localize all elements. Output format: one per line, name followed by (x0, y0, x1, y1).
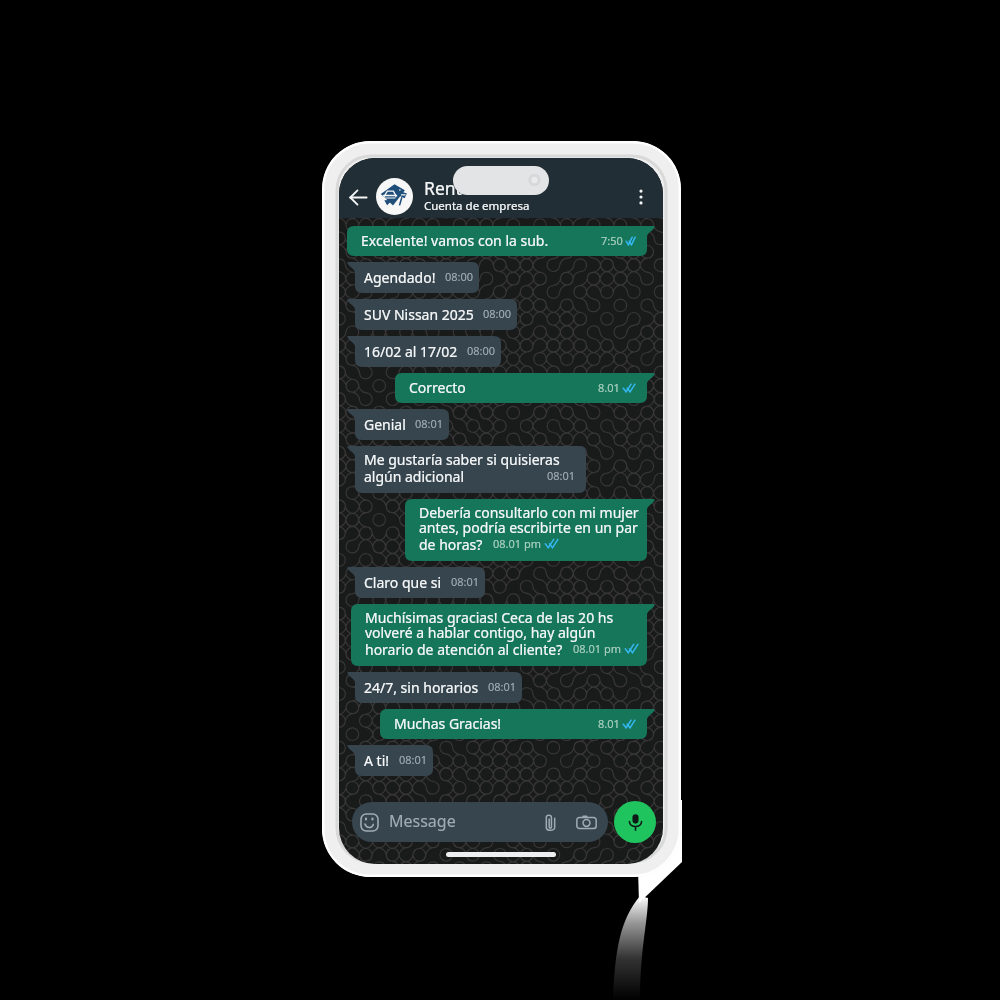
button[interactable]: More options (626, 182, 656, 212)
button[interactable]: Debería consultarlo con mi mujer (405, 499, 655, 561)
button[interactable]: SUV Nissan 2025 (347, 299, 517, 330)
staticText: Message (389, 813, 456, 831)
staticText: Me gustaría saber si quisieras (364, 453, 560, 468)
staticText: de horas? (419, 538, 483, 553)
staticText: Muchísimas gracias! Ceca de las 20 hs (365, 611, 614, 626)
button[interactable]: 16/02 al 17/02 (347, 336, 501, 367)
button[interactable]: Agendado! (347, 262, 479, 293)
staticText: Debería consultarlo con mi mujer (419, 506, 639, 521)
staticText: 08.01 pm (573, 641, 622, 656)
staticText: 08.01 pm (493, 536, 542, 551)
button[interactable]: Claro que si (347, 567, 485, 598)
button[interactable]: Attach (541, 813, 560, 832)
button[interactable]: Voice message (614, 801, 656, 843)
staticText: 08:01 (415, 416, 444, 431)
button[interactable]: Muchas Gracias! (380, 709, 655, 739)
staticText: algún adicional (364, 470, 465, 485)
staticText: antes, podría escribirte en un par (419, 521, 638, 536)
staticText: 24/7, sin horarios (364, 681, 479, 696)
staticText: 8.01 (598, 716, 620, 731)
staticText: 16/02 al 17/02 (364, 345, 458, 360)
staticText: Muchas Gracias! (394, 717, 502, 732)
staticText: Agendado! (364, 271, 436, 286)
staticText: Cuenta de empresa (424, 200, 530, 213)
staticText: Genial (364, 418, 406, 433)
button[interactable]: Genial (347, 409, 449, 440)
button[interactable]: Back (345, 184, 371, 210)
staticText: horario de atención al cliente? (365, 643, 563, 658)
staticText: 7:50 (601, 233, 623, 248)
staticText: 08:00 (445, 269, 474, 284)
button[interactable]: Muchísimas gracias! Ceca de las 20 hs (351, 604, 655, 666)
staticText: 08:01 (547, 468, 576, 483)
staticText: Rent (424, 180, 462, 199)
button[interactable]: Correcto (395, 373, 655, 403)
staticText: Excelente! vamos con la sub. (361, 234, 549, 249)
staticText: 08:01 (488, 679, 517, 694)
staticText: 08:01 (451, 574, 480, 589)
button[interactable]: Excelente! vamos con la sub. (347, 226, 655, 256)
staticText: 08:01 (399, 752, 428, 767)
button[interactable]: A ti! (347, 745, 433, 776)
button[interactable]: Me gustaría saber si quisieras (347, 446, 586, 493)
button[interactable]: Message (352, 802, 608, 842)
button[interactable]: Camera (576, 812, 597, 833)
staticText: A ti! (364, 754, 390, 769)
staticText: Claro que si (364, 576, 442, 591)
staticText: 08:00 (467, 343, 496, 358)
staticText: SUV Nissan 2025 (364, 308, 474, 323)
staticText: Correcto (409, 381, 466, 396)
staticText: 8.01 (598, 380, 620, 395)
staticText: volveré a hablar contigo, hay algún (365, 626, 596, 641)
button[interactable]: 24/7, sin horarios (347, 672, 522, 703)
staticText: 08:00 (483, 306, 512, 321)
